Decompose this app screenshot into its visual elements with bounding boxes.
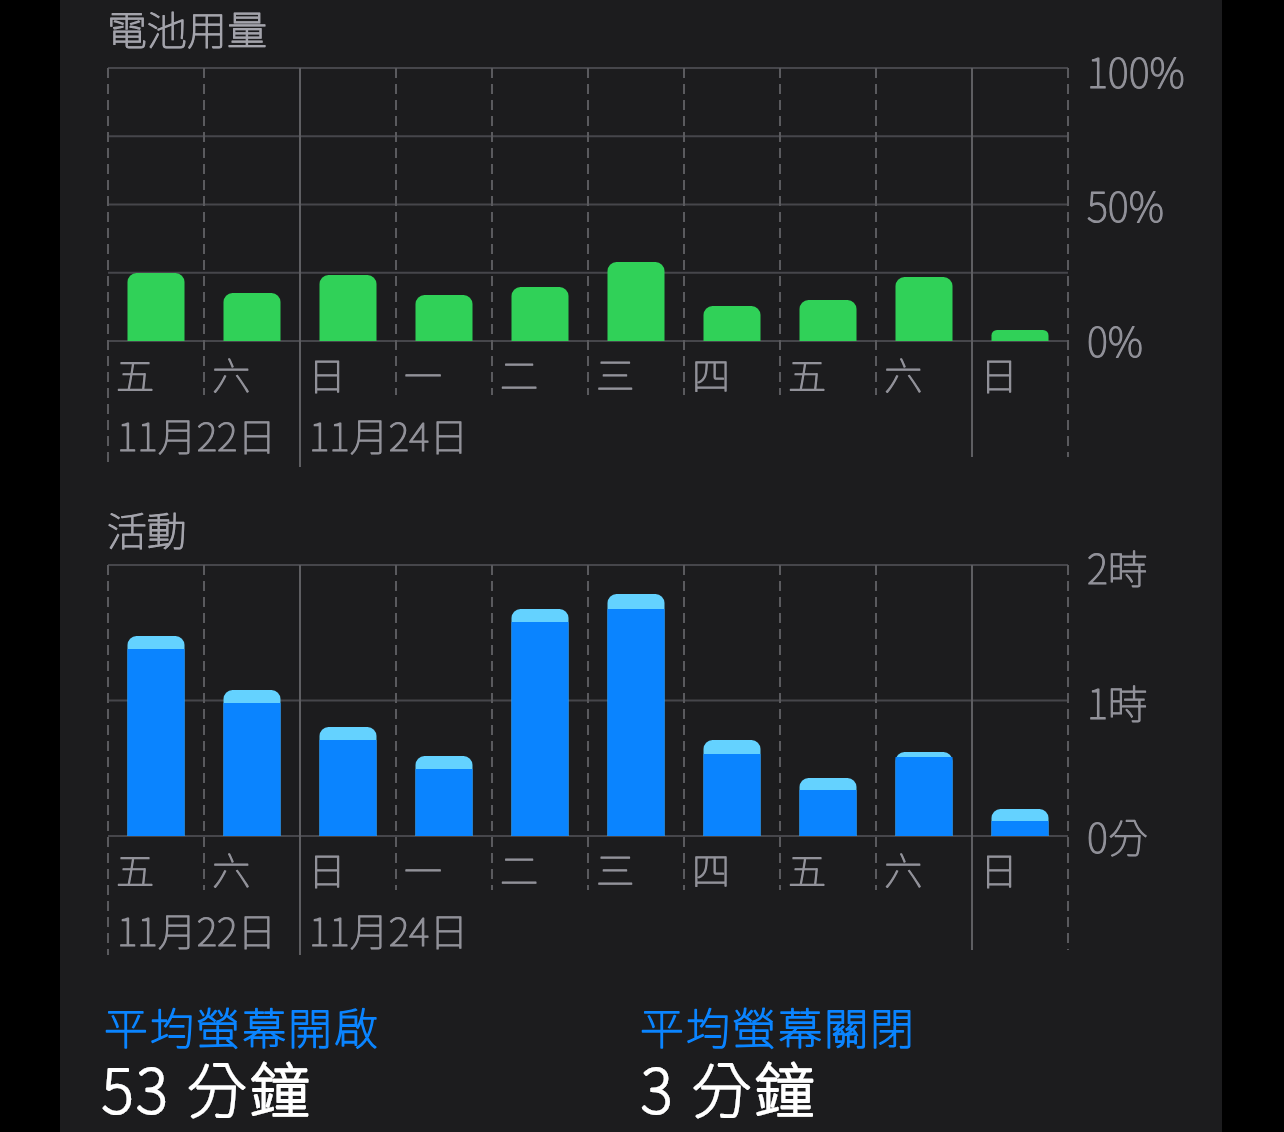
- staticText: 日: [308, 841, 347, 896]
- staticText: 四: [692, 841, 731, 896]
- staticText: 平均螢幕關閉: [640, 994, 916, 1058]
- staticText: 一: [404, 841, 443, 896]
- staticText: 平均螢幕關閉: [640, 994, 916, 1058]
- staticText: 五: [116, 841, 155, 896]
- staticText: 四: [692, 841, 731, 896]
- staticText: 六: [884, 841, 923, 896]
- staticText: 五: [788, 346, 827, 401]
- staticText: 三: [596, 346, 635, 401]
- staticText: 五: [788, 346, 827, 401]
- button[interactable]: 3 分鐘: [641, 1041, 1201, 1131]
- staticText: 二: [500, 346, 539, 401]
- staticText: 五: [116, 346, 155, 401]
- staticText: 一: [404, 346, 443, 401]
- staticText: 六: [212, 841, 251, 896]
- staticText: 100%: [1087, 42, 1185, 100]
- staticText: 1時: [1087, 673, 1148, 731]
- staticText: 六: [884, 346, 923, 401]
- staticText: 四: [692, 346, 731, 401]
- staticText: 平均螢幕開啟: [104, 994, 380, 1058]
- staticText: 日: [308, 346, 347, 401]
- staticText: 活動: [107, 500, 187, 558]
- staticText: 日: [980, 346, 1019, 401]
- staticText: 二: [500, 841, 539, 896]
- staticText: 日: [980, 346, 1019, 401]
- staticText: 六: [212, 346, 251, 401]
- button[interactable]: 平均螢幕開啟: [104, 981, 664, 1071]
- staticText: 六: [884, 346, 923, 401]
- staticText: 11月24日: [309, 901, 469, 957]
- button[interactable]: 53 分鐘: [102, 1041, 662, 1131]
- staticText: 一: [404, 841, 443, 896]
- staticText: 1時: [1087, 673, 1148, 731]
- staticText: 3 分鐘: [641, 1043, 818, 1130]
- staticText: 2時: [1087, 538, 1148, 596]
- staticText: 11月22日: [117, 901, 277, 957]
- staticText: 11月24日: [309, 406, 469, 462]
- staticText: 2時: [1087, 538, 1148, 596]
- staticText: 電池用量: [107, 0, 267, 57]
- staticText: 活動: [107, 500, 187, 558]
- staticText: 三: [596, 346, 635, 401]
- staticText: 11月24日: [309, 406, 469, 462]
- staticText: 11月24日: [309, 901, 469, 957]
- staticText: 平均螢幕開啟: [104, 994, 380, 1058]
- staticText: 50%: [1087, 176, 1164, 234]
- staticText: 日: [308, 346, 347, 401]
- staticText: 二: [500, 346, 539, 401]
- staticText: 二: [500, 841, 539, 896]
- staticText: 0分: [1087, 807, 1148, 865]
- staticText: 日: [980, 841, 1019, 896]
- staticText: 0%: [1087, 311, 1144, 369]
- staticText: 四: [692, 346, 731, 401]
- staticText: 三: [596, 841, 635, 896]
- staticText: 五: [116, 841, 155, 896]
- staticText: 53 分鐘: [102, 1043, 313, 1130]
- staticText: 53 分鐘: [102, 1043, 313, 1130]
- staticText: 日: [980, 841, 1019, 896]
- staticText: 六: [212, 841, 251, 896]
- staticText: 11月22日: [117, 406, 277, 462]
- staticText: 一: [404, 346, 443, 401]
- staticText: 日: [308, 841, 347, 896]
- staticText: 五: [116, 346, 155, 401]
- button[interactable]: 平均螢幕關閉: [640, 981, 1200, 1071]
- staticText: 0分: [1087, 807, 1148, 865]
- staticText: 三: [596, 841, 635, 896]
- staticText: 五: [788, 841, 827, 896]
- staticText: 50%: [1087, 176, 1164, 234]
- staticText: 3 分鐘: [641, 1043, 818, 1130]
- staticText: 五: [788, 841, 827, 896]
- staticText: 電池用量: [107, 0, 267, 57]
- staticText: 六: [212, 346, 251, 401]
- staticText: 六: [884, 841, 923, 896]
- staticText: 0%: [1087, 311, 1144, 369]
- staticText: 11月22日: [117, 901, 277, 957]
- staticText: 11月22日: [117, 406, 277, 462]
- staticText: 100%: [1087, 42, 1185, 100]
